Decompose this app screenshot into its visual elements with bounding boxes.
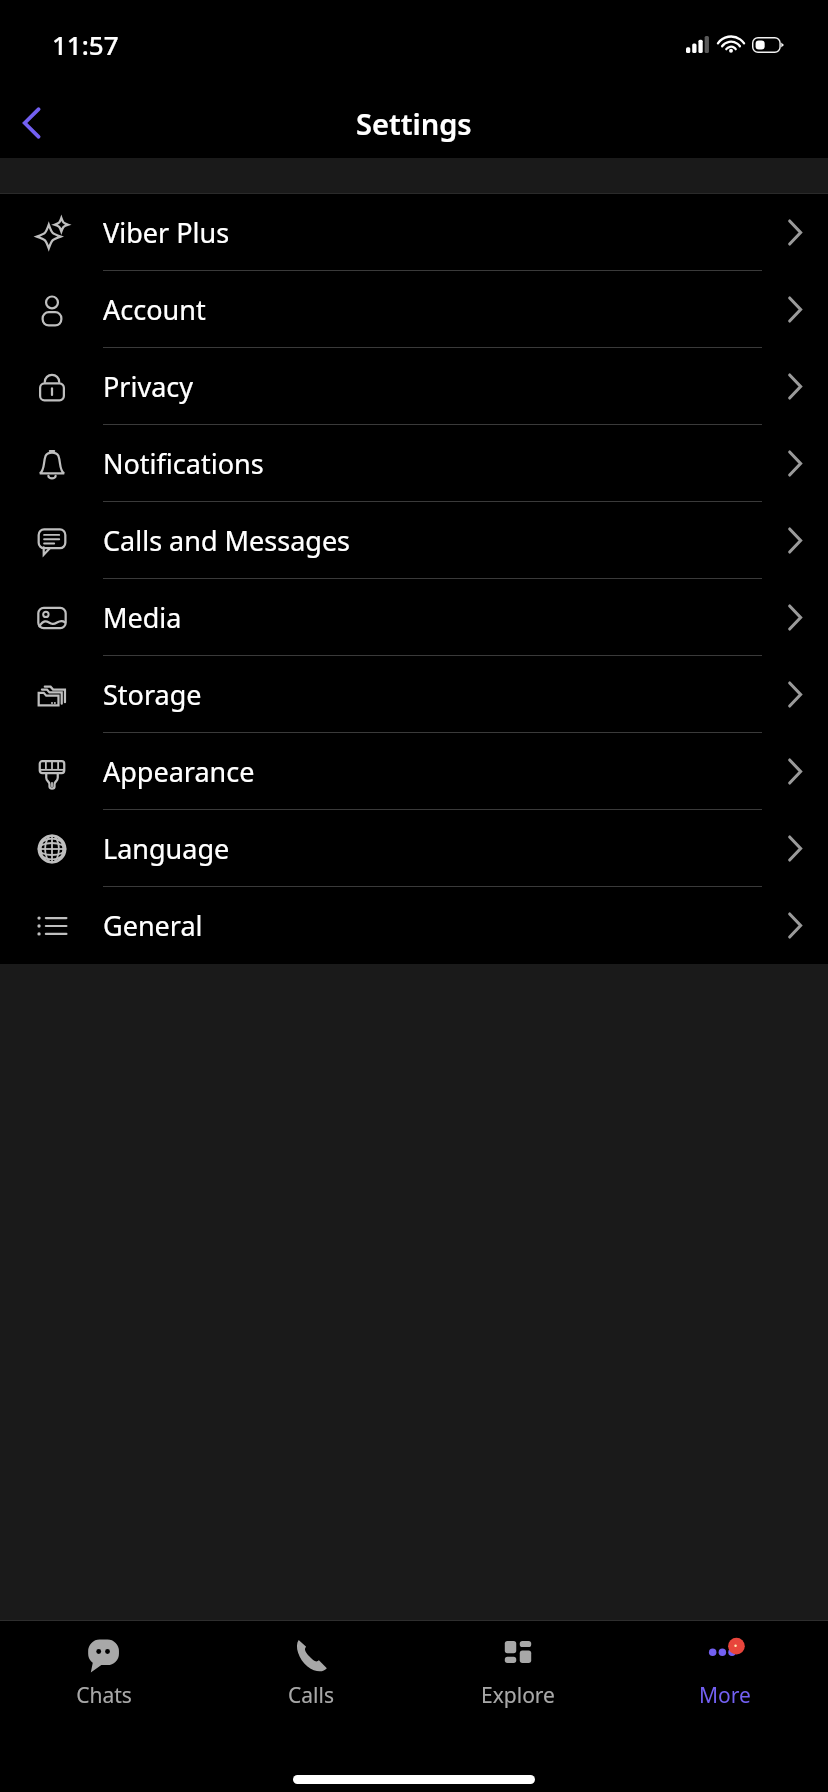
staticText: Privacy xyxy=(103,368,194,405)
staticText: Explore xyxy=(481,1681,555,1710)
button[interactable]: More xyxy=(621,1621,828,1741)
staticText: Calls and Messages xyxy=(103,522,351,559)
button[interactable]: Notifications xyxy=(0,425,828,502)
staticText: General xyxy=(103,907,203,944)
button[interactable]: Media xyxy=(0,579,828,656)
staticText: Language xyxy=(103,830,230,867)
button[interactable]: Back xyxy=(0,92,62,154)
staticText: More xyxy=(699,1681,751,1710)
staticText: Calls xyxy=(288,1681,334,1710)
button[interactable]: General xyxy=(0,887,828,964)
button[interactable]: Language xyxy=(0,810,828,887)
staticText: Account xyxy=(103,291,206,328)
staticText: Chats xyxy=(76,1681,132,1710)
button[interactable]: Account xyxy=(0,271,828,348)
button[interactable]: Appearance xyxy=(0,733,828,810)
button[interactable]: Privacy xyxy=(0,348,828,425)
staticText: Settings xyxy=(356,104,472,143)
button[interactable]: Explore xyxy=(414,1621,621,1741)
staticText: 11:57 xyxy=(52,27,119,62)
button[interactable]: Calls xyxy=(207,1621,414,1741)
staticText: Storage xyxy=(103,676,202,713)
button[interactable]: Storage xyxy=(0,656,828,733)
staticText: Viber Plus xyxy=(103,214,230,251)
button[interactable]: Chats xyxy=(0,1621,207,1741)
button[interactable]: Calls and Messages xyxy=(0,502,828,579)
staticText: Appearance xyxy=(103,753,255,790)
staticText: Notifications xyxy=(103,445,264,482)
button[interactable]: Viber Plus xyxy=(0,194,828,271)
staticText: Media xyxy=(103,599,182,636)
